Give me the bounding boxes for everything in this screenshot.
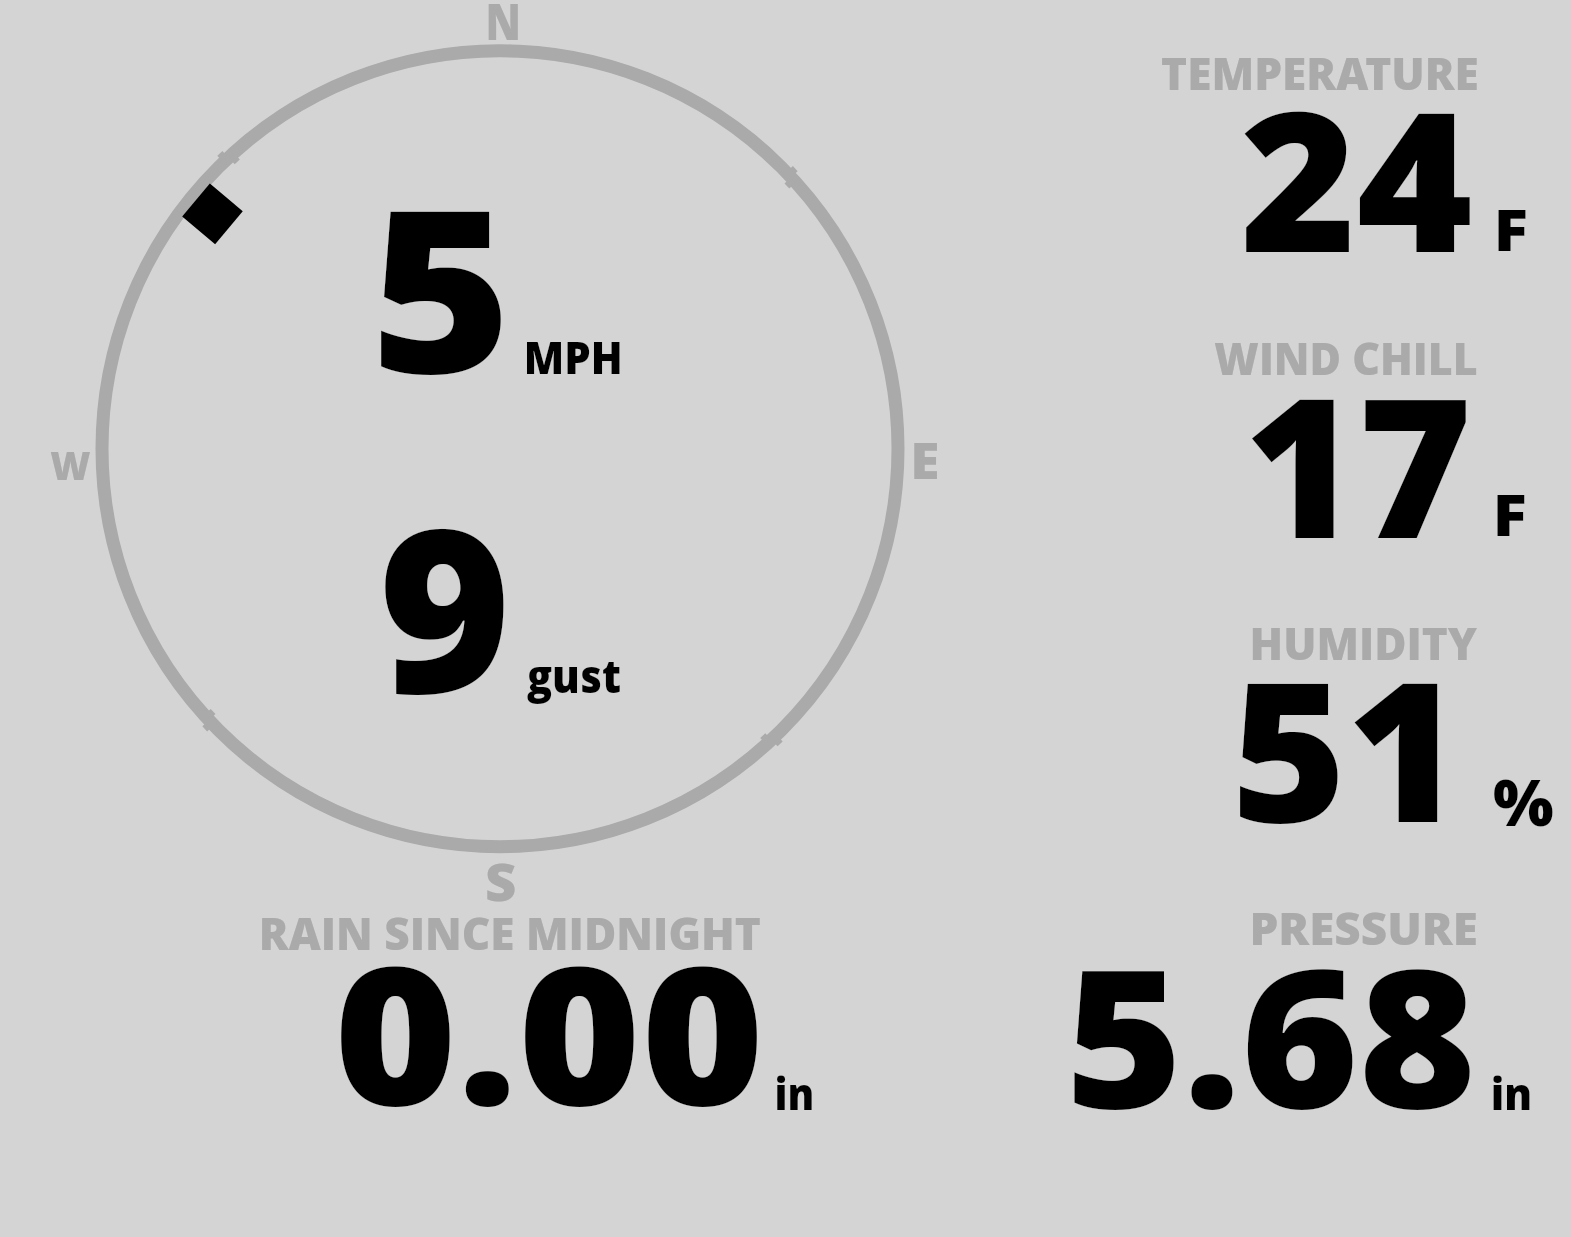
button[interactable]: Rain since midnight 0.00 in [200, 890, 900, 1125]
button[interactable]: Temperature 24 F [1040, 30, 1565, 265]
button[interactable]: Pressure 5.68 in [1040, 890, 1565, 1125]
button[interactable]: Wind chill 17 F [1040, 320, 1565, 550]
button[interactable]: Humidity 51 percent [1040, 605, 1565, 840]
button[interactable]: Wind speed 5 MPH, gusting 9, direction n… [40, 10, 960, 900]
